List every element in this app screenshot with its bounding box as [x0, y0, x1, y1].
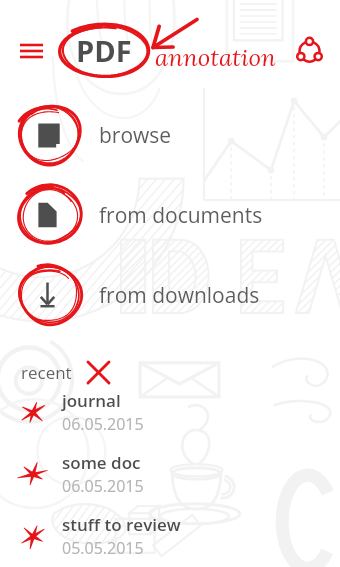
staticText: some doc — [62, 451, 141, 474]
button[interactable]: journal — [0, 384, 340, 440]
staticText: journal — [62, 389, 121, 412]
staticText: stuff to review — [62, 513, 181, 536]
button[interactable]: Share — [289, 30, 329, 70]
button[interactable]: browse — [0, 103, 340, 167]
staticText: 06.05.2015 — [62, 475, 144, 497]
button[interactable]: stuff to review — [0, 508, 340, 564]
staticText: PDF — [76, 31, 132, 70]
button[interactable]: from documents — [0, 183, 340, 247]
button[interactable]: some doc — [0, 446, 340, 502]
staticText: browse — [99, 121, 172, 150]
button[interactable]: PDF — [57, 23, 150, 79]
staticText: from downloads — [99, 281, 260, 310]
button[interactable]: Clear recent — [82, 356, 114, 388]
staticText: 06.05.2015 — [62, 413, 144, 435]
staticText: from documents — [99, 201, 263, 230]
staticText: recent — [21, 361, 72, 384]
button[interactable]: Menu — [11, 35, 51, 67]
staticText: 05.05.2015 — [62, 537, 144, 559]
staticText: annotation — [155, 42, 276, 73]
button[interactable]: from downloads — [0, 263, 340, 327]
